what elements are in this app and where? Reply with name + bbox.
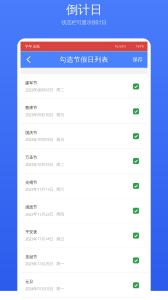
button[interactable]: 感恩节 — [20, 198, 147, 223]
staticText: 感恩节 — [25, 205, 37, 210]
staticText: 2023年12月25日 周一 — [25, 261, 64, 266]
staticText: 2024年01月01日 周一 — [25, 286, 64, 291]
staticText: 2023年08月01日 周二 — [25, 87, 64, 92]
button[interactable]: 圣诞节 — [20, 248, 147, 273]
staticText: 万圣节 — [25, 155, 37, 160]
staticText: 100% — [135, 45, 143, 48]
staticText: 16.6K/s — [114, 45, 125, 48]
button[interactable]: 光棍节 — [20, 174, 147, 198]
button[interactable]: 国庆节 — [20, 124, 147, 148]
staticText: 光棍节 — [25, 180, 37, 185]
staticText: 教师节 — [25, 105, 37, 110]
button[interactable]: 教师节 — [20, 99, 147, 123]
staticText: 平安夜 — [25, 230, 37, 234]
staticText: 勾选节假日列表 — [59, 55, 108, 64]
staticText: 倒计日 — [66, 2, 102, 17]
staticText: 2023年11月23日 周四 — [25, 211, 64, 217]
staticText: 2023年11月11日 周六 — [25, 187, 64, 192]
button[interactable]: 建军节 — [20, 74, 147, 99]
staticText: 2023年10月31日 周二 — [25, 162, 64, 167]
button[interactable]: 万圣节 — [20, 149, 147, 173]
staticText: 保存 — [132, 56, 142, 63]
staticText: 圣诞节 — [25, 254, 37, 259]
staticText: 元旦 — [25, 279, 33, 284]
staticText: 2023年09月10日 周日 — [25, 112, 64, 117]
button[interactable]: 元旦 — [20, 273, 147, 297]
staticText: 建军节 — [25, 80, 37, 85]
button[interactable]: 返回 — [23, 53, 34, 66]
button[interactable]: 保存 — [130, 54, 144, 65]
staticText: 2023年12月24日 周日 — [25, 236, 64, 242]
staticText: 下午3:05 — [24, 44, 39, 49]
staticText: 国庆节 — [25, 130, 37, 135]
staticText: 状态栏可显示倒计日 — [61, 19, 106, 26]
button[interactable]: 平安夜 — [20, 223, 147, 248]
staticText: 2023年10月01日 周日 — [25, 137, 64, 142]
